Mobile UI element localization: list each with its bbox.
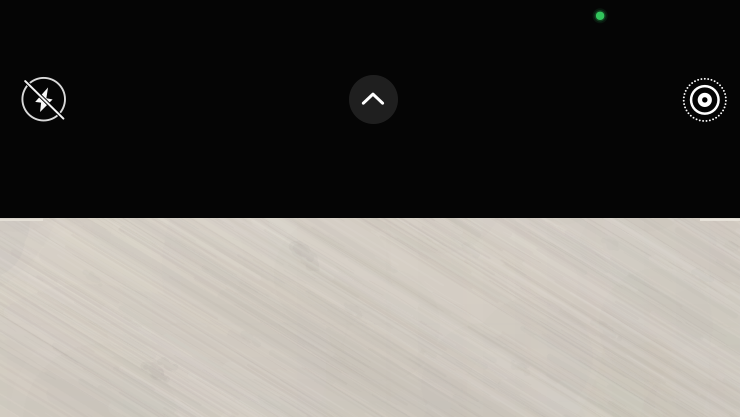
button[interactable]: More camera controls [349,75,398,124]
button[interactable]: Flash off [22,77,66,121]
button[interactable]: Live Photo on [682,77,728,123]
